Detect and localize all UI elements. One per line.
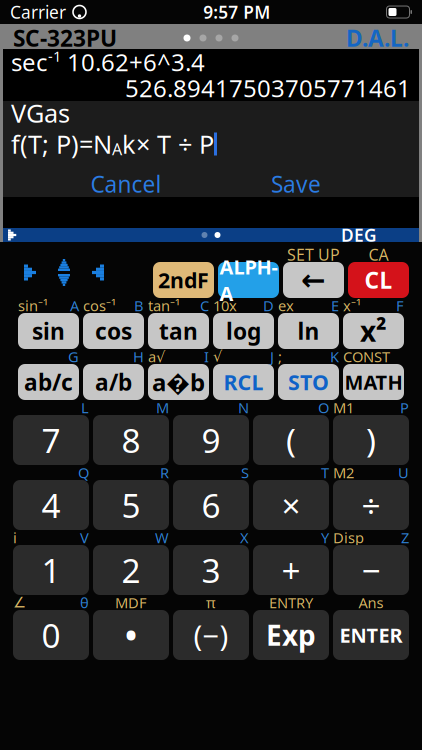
staticText: MDF <box>115 593 147 612</box>
button[interactable]: 2 <box>93 545 169 595</box>
staticText: ; <box>278 347 282 366</box>
staticText: Q <box>78 463 89 482</box>
button[interactable]: Cursor right <box>81 252 115 292</box>
button[interactable]: ÷ <box>333 480 409 530</box>
button[interactable]: tan <box>148 313 209 349</box>
button[interactable]: 4 <box>13 480 89 530</box>
staticText: (−) <box>193 615 228 654</box>
staticText: CL <box>364 265 392 295</box>
staticText: T <box>321 463 329 482</box>
staticText: SET UP <box>287 244 340 265</box>
staticText: a√ <box>148 347 165 366</box>
button[interactable]: ) <box>333 415 409 465</box>
button[interactable]: 2ndF <box>153 262 214 298</box>
button[interactable]: ab/c <box>18 364 79 400</box>
staticText: ) <box>366 418 376 462</box>
button[interactable]: a�b <box>148 364 209 400</box>
button[interactable]: 7 <box>13 415 89 465</box>
staticText: + <box>281 548 300 592</box>
button[interactable]: Cursor up and down <box>47 252 81 292</box>
staticText: sin⁻¹ <box>18 296 48 315</box>
button[interactable]: 9 <box>173 415 249 465</box>
button[interactable]: STO <box>278 364 339 400</box>
staticText: a�b <box>152 366 205 398</box>
staticText: D <box>263 296 274 315</box>
staticText: N <box>238 398 249 417</box>
staticText: cos <box>95 316 132 346</box>
staticText: sec <box>11 46 48 78</box>
staticText: a/b <box>95 367 132 397</box>
staticText: 0 <box>41 613 60 657</box>
button[interactable]: ln <box>278 313 339 349</box>
button[interactable]: log <box>213 313 274 349</box>
staticText: π <box>206 593 216 612</box>
staticText: DEG <box>341 223 377 246</box>
button[interactable]: sin <box>18 313 79 349</box>
staticText: E <box>331 296 339 315</box>
staticText: VGas <box>11 96 70 130</box>
staticText: Z <box>401 528 409 547</box>
staticText: H <box>133 347 144 366</box>
staticText: x⁻¹ <box>343 296 361 315</box>
button[interactable]: CL <box>348 262 409 298</box>
button[interactable]: − <box>333 545 409 595</box>
staticText: M <box>156 398 169 417</box>
staticText: U <box>398 463 409 482</box>
button[interactable]: ALPHA <box>218 262 279 298</box>
button[interactable]: Save <box>241 167 351 201</box>
button[interactable]: Delete <box>283 262 344 298</box>
button[interactable]: MATH <box>343 364 404 400</box>
button[interactable]: Cancel <box>71 167 181 201</box>
staticText: D.A.L. <box>346 23 409 53</box>
button[interactable]: cos <box>83 313 144 349</box>
staticText: SC-323PU <box>13 23 117 53</box>
staticText: Disp <box>333 528 364 547</box>
staticText: A <box>70 296 79 315</box>
staticText: 8 <box>121 418 140 462</box>
staticText: sin <box>32 316 65 346</box>
staticText: P <box>400 398 409 417</box>
staticText: K <box>330 347 339 366</box>
button[interactable]: a/b <box>83 364 144 400</box>
button[interactable]: 5 <box>93 480 169 530</box>
button[interactable]: 1 <box>13 545 89 595</box>
staticText: ← <box>301 263 326 297</box>
button[interactable]: Decimal point <box>93 610 169 660</box>
staticText: i <box>13 528 17 547</box>
button[interactable]: ENTER <box>333 610 409 660</box>
staticText: f <box>11 127 20 161</box>
staticText: 1 <box>41 548 60 592</box>
button[interactable]: x² <box>343 313 404 349</box>
staticText: 5 <box>121 483 140 527</box>
staticText: ln <box>297 316 319 346</box>
button[interactable]: 3 <box>173 545 249 595</box>
button[interactable]: ( <box>253 415 329 465</box>
staticText: O <box>318 398 329 417</box>
button[interactable]: × <box>253 480 329 530</box>
staticText: Exp <box>266 616 316 654</box>
staticText: W <box>155 528 169 547</box>
button[interactable]: 0 <box>13 610 89 660</box>
staticText: V <box>80 528 89 547</box>
button[interactable]: 8 <box>93 415 169 465</box>
staticText: ÷ <box>361 483 380 527</box>
button[interactable]: RCL <box>213 364 274 400</box>
staticText: 10x <box>213 296 237 315</box>
button[interactable]: Cursor left <box>13 252 47 292</box>
staticText: log <box>226 316 261 346</box>
button[interactable]: 6 <box>173 480 249 530</box>
staticText: √ <box>213 348 222 365</box>
button[interactable]: (−) <box>173 610 249 660</box>
button[interactable]: + <box>253 545 329 595</box>
staticText: R <box>160 463 169 482</box>
staticText: 9:57 PM <box>203 0 270 23</box>
staticText: MATH <box>344 369 402 395</box>
staticText: ex <box>278 296 294 315</box>
button[interactable]: Exp <box>253 610 329 660</box>
staticText: • <box>125 614 137 656</box>
staticText: cos⁻¹ <box>83 296 116 315</box>
staticText: L <box>81 398 89 417</box>
staticText: B <box>134 296 144 315</box>
staticText: − <box>361 548 380 592</box>
staticText: RCL <box>223 368 263 396</box>
